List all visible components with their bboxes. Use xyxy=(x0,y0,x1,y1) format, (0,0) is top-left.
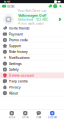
button[interactable]: Ride xyxy=(5,110,18,120)
button[interactable]: Invite friends xyxy=(0,25,64,31)
staticText: Settings xyxy=(9,61,22,66)
staticText: Safety xyxy=(9,67,19,72)
staticText: Account xyxy=(48,116,57,119)
staticText: Ride xyxy=(9,116,15,119)
button[interactable]: Notifications xyxy=(57,5,62,8)
button[interactable]: Delete account xyxy=(0,73,64,78)
staticText: Chat xyxy=(36,116,41,119)
staticText: Delete account xyxy=(9,73,34,78)
staticText: Unlocked · 123 ABC xyxy=(18,18,48,21)
staticText: Bolt xyxy=(7,4,14,9)
staticText: Ride history xyxy=(9,50,28,54)
button[interactable]: Payment xyxy=(0,31,64,37)
staticText: Support xyxy=(9,44,21,48)
staticText: Volkswagen Golf xyxy=(18,13,46,18)
staticText: Help centre xyxy=(9,79,28,83)
button[interactable]: Privacy xyxy=(0,84,64,90)
staticText: Invite friends xyxy=(9,26,30,30)
button[interactable]: Ride history xyxy=(0,49,64,55)
staticText: About xyxy=(9,91,18,95)
staticText: 4 min walk away xyxy=(18,22,44,25)
staticText: Privacy xyxy=(9,85,21,89)
staticText: Drive xyxy=(22,116,28,119)
staticText: 9:41 xyxy=(4,0,10,3)
button[interactable]: Open car details xyxy=(58,18,64,21)
button[interactable]: About xyxy=(0,90,64,96)
staticText: Your Bolt Drive car xyxy=(17,9,46,13)
staticText: Promo code xyxy=(9,38,28,42)
button[interactable]: Help centre xyxy=(0,78,64,84)
staticText: Notifications xyxy=(9,55,30,60)
button[interactable]: Notifications xyxy=(0,55,64,61)
button[interactable]: Settings xyxy=(0,61,64,67)
button[interactable]: Bolt home xyxy=(2,4,14,9)
button[interactable]: Support xyxy=(0,43,64,49)
button[interactable]: Safety xyxy=(0,67,64,73)
button[interactable]: Drive xyxy=(18,110,32,120)
button[interactable]: Promo code xyxy=(0,37,64,43)
button[interactable]: Invite friends xyxy=(48,5,52,8)
button[interactable]: Settings xyxy=(52,5,57,8)
staticText: Payment xyxy=(9,32,23,36)
button[interactable]: Account xyxy=(45,110,59,120)
button[interactable]: Chat xyxy=(32,110,45,120)
